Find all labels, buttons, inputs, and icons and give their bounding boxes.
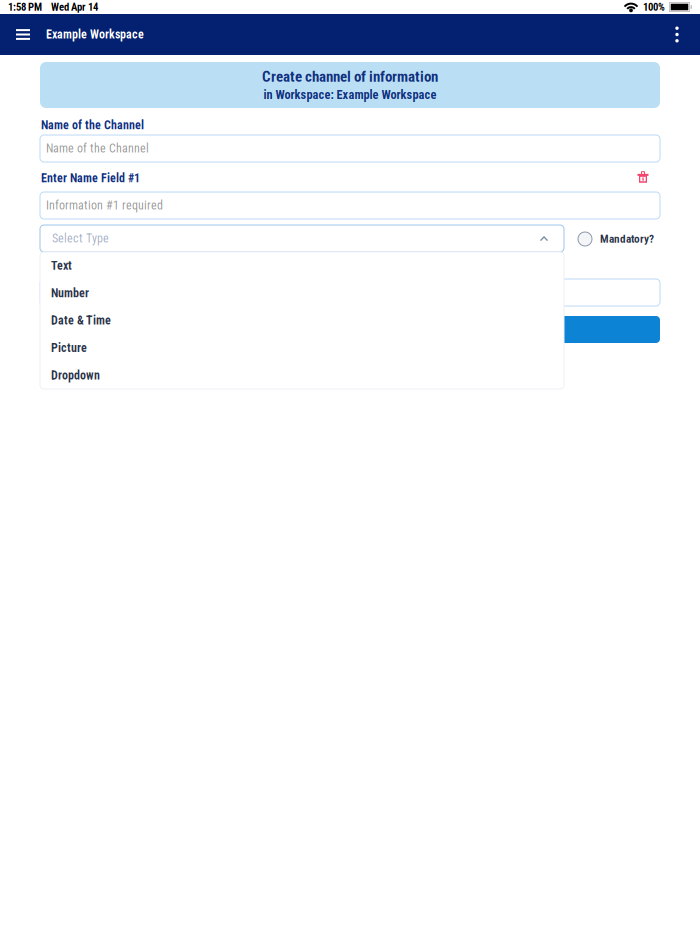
staticText: Enter Name Field #1: [41, 171, 140, 185]
staticText: Create channel of information: [262, 68, 438, 85]
button[interactable]: Delete field: [632, 168, 654, 186]
staticText: Name of the Channel: [41, 118, 144, 132]
staticText: Name of the Channel: [46, 141, 149, 156]
staticText: 100%: [643, 1, 665, 13]
staticText: in Workspace: Example Workspace: [263, 87, 436, 102]
staticText: Date & Time: [51, 313, 111, 328]
staticText: Wed Apr 14: [51, 1, 98, 13]
staticText: Number: [51, 286, 89, 300]
staticText: Example Workspace: [46, 27, 144, 42]
staticText: Picture: [51, 341, 87, 355]
button[interactable]: More options: [662, 14, 692, 55]
staticText: 1:58 PM: [8, 1, 42, 13]
button[interactable]: Menu: [8, 14, 38, 55]
staticText: Mandatory?: [600, 232, 654, 246]
staticText: Dropdown: [51, 368, 100, 382]
staticText: Text: [51, 259, 72, 273]
staticText: Select Type: [52, 231, 109, 246]
staticText: Information #1 required: [46, 198, 163, 213]
